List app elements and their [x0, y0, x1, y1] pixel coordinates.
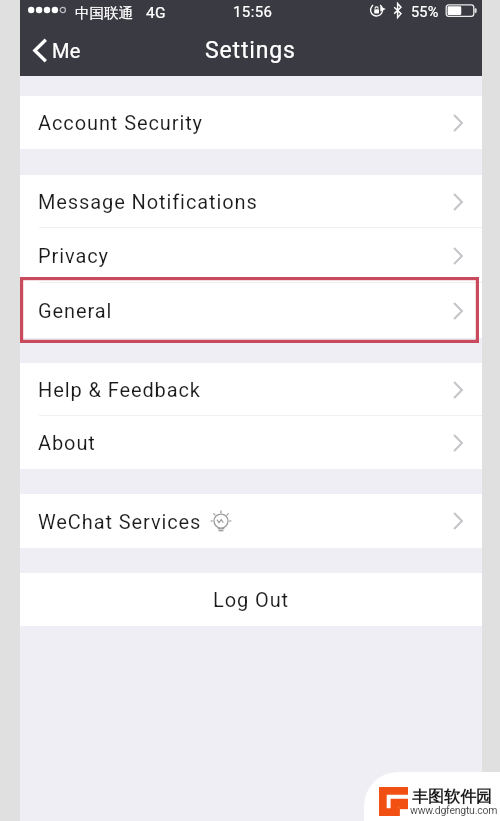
staticText: Privacy	[38, 244, 109, 267]
button[interactable]: Help & Feedback	[20, 363, 482, 416]
staticText: 丰图软件园	[412, 787, 492, 807]
staticText: Settings	[205, 37, 296, 64]
staticText: Me	[52, 39, 81, 62]
staticText: 4G	[146, 4, 167, 22]
staticText: Account Security	[38, 111, 203, 134]
button[interactable]: Privacy	[20, 228, 482, 283]
button[interactable]: Account Security	[20, 96, 482, 149]
staticText: General	[38, 299, 113, 322]
button[interactable]: General	[20, 283, 482, 338]
staticText: Help & Feedback	[38, 378, 201, 401]
button[interactable]: WeChat Services	[20, 494, 482, 548]
button[interactable]: Log Out	[20, 573, 482, 626]
staticText: WeChat Services	[38, 510, 202, 533]
button[interactable]: Message Notifications	[20, 175, 482, 228]
button[interactable]: About	[20, 416, 482, 469]
staticText: Log Out	[213, 588, 289, 611]
staticText: Message Notifications	[38, 190, 258, 213]
staticText: 15:56	[233, 3, 273, 21]
button[interactable]: Back to Me	[33, 27, 81, 73]
staticText: 中国联通	[75, 4, 133, 22]
staticText: 55%	[411, 4, 439, 21]
staticText: www.dgfengtu.com	[410, 804, 498, 816]
staticText: About	[38, 431, 96, 454]
